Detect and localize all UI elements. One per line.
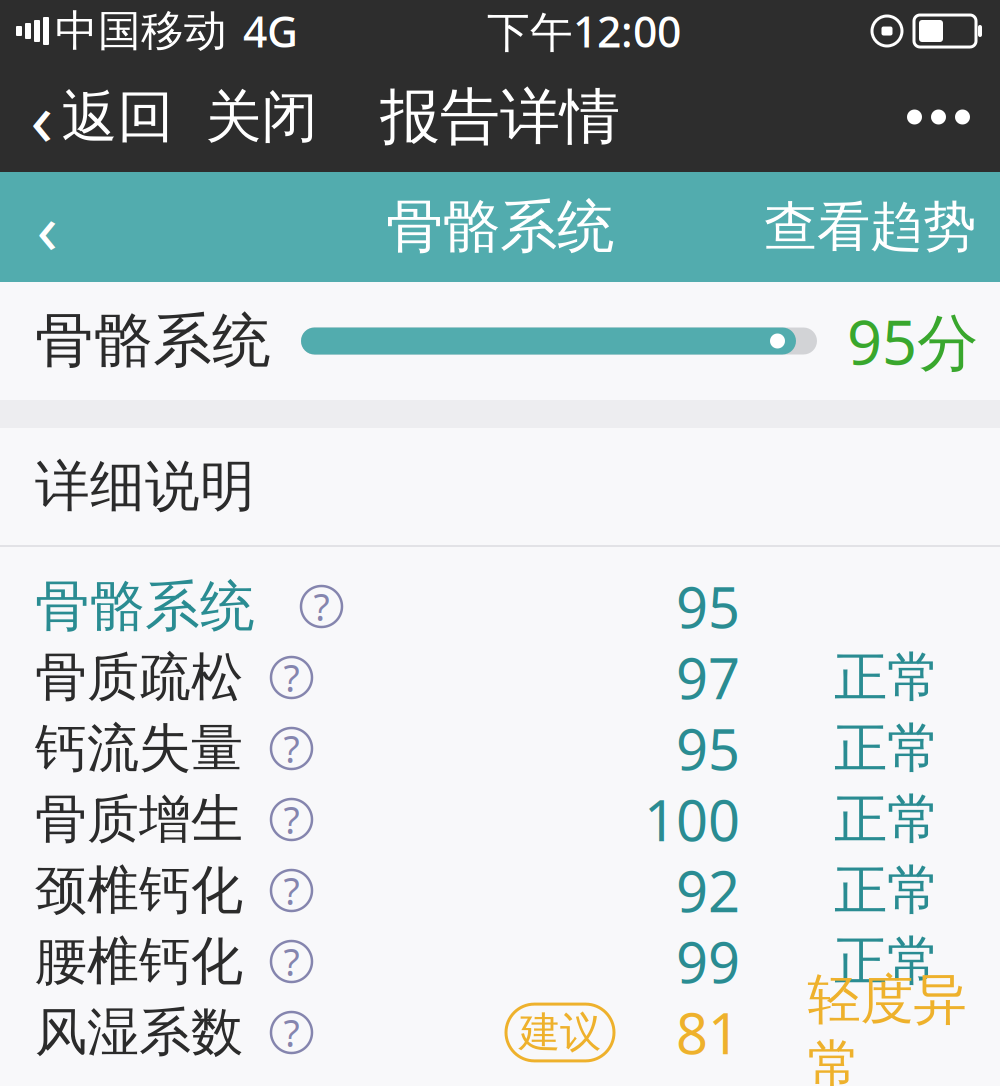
- button[interactable]: 钙流失量: [0, 713, 1000, 784]
- button[interactable]: 风湿系数: [0, 997, 1000, 1068]
- staticText: 查看趋势: [764, 194, 976, 260]
- staticText: 报告详情: [380, 80, 620, 154]
- staticText: 81: [676, 995, 740, 1070]
- staticText: 100: [644, 782, 740, 857]
- staticText: 正常: [834, 929, 940, 994]
- staticText: ?: [283, 937, 299, 986]
- staticText: 骨骼系统: [35, 573, 255, 640]
- staticText: 正常: [834, 716, 940, 781]
- button[interactable]: 骨质疏松: [0, 642, 1000, 713]
- staticText: 99: [676, 924, 740, 999]
- button[interactable]: 关闭: [195, 63, 327, 171]
- staticText: 骨质疏松: [35, 646, 243, 709]
- button[interactable]: 颈椎钙化: [0, 855, 1000, 926]
- staticText: 钙流失量: [35, 717, 243, 780]
- staticText: ?: [283, 795, 299, 844]
- staticText: 骨骼系统: [386, 192, 614, 262]
- button[interactable]: 骨质增生: [0, 784, 1000, 855]
- staticText: 95: [676, 711, 740, 786]
- staticText: 骨骼系统: [35, 305, 271, 377]
- button[interactable]: 查看趋势: [758, 172, 982, 282]
- staticText: 风湿系数: [35, 1001, 243, 1064]
- staticText: 正常: [834, 787, 940, 852]
- button[interactable]: 腰椎钙化: [0, 926, 1000, 997]
- staticText: 95分: [847, 300, 978, 382]
- staticText: 92: [676, 853, 740, 928]
- staticText: 轻度异常: [807, 967, 966, 1086]
- button[interactable]: ‹: [24, 63, 179, 171]
- staticText: 正常: [834, 858, 940, 923]
- staticText: ?: [283, 724, 299, 773]
- staticText: 中国移动: [55, 5, 227, 57]
- button[interactable]: 返回: [22, 172, 72, 282]
- staticText: 颈椎钙化: [35, 859, 243, 922]
- staticText: 骨质增生: [35, 788, 243, 851]
- staticText: 建议: [519, 1007, 601, 1058]
- button[interactable]: 更多: [893, 63, 984, 171]
- staticText: 关闭: [205, 83, 317, 151]
- staticText: ?: [283, 866, 299, 915]
- staticText: ‹: [36, 181, 57, 273]
- staticText: 95: [676, 569, 740, 644]
- staticText: ‹: [30, 67, 53, 167]
- staticText: ?: [313, 582, 329, 631]
- staticText: ?: [283, 653, 299, 702]
- staticText: 腰椎钙化: [35, 930, 243, 993]
- staticText: 4G: [243, 3, 298, 59]
- staticText: 正常: [834, 645, 940, 710]
- staticText: 97: [676, 640, 740, 715]
- staticText: ?: [283, 1008, 299, 1057]
- staticText: 下午12:00: [487, 3, 681, 59]
- button[interactable]: 骨骼系统: [0, 571, 1000, 642]
- staticText: 返回: [61, 83, 173, 151]
- staticText: 详细说明: [35, 453, 255, 520]
